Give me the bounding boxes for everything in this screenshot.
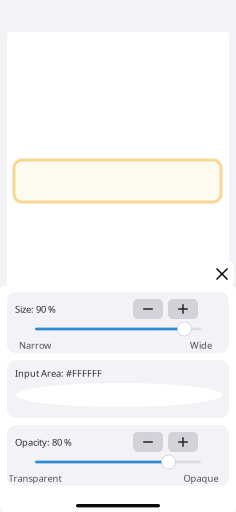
staticText: Transparent — [8, 472, 61, 484]
staticText: Opaque — [183, 472, 218, 484]
button[interactable]: Decrease — [133, 432, 163, 452]
staticText: Opacity: 80 % — [15, 436, 72, 448]
button[interactable]: Close — [210, 262, 234, 286]
staticText: Size: 90 % — [15, 303, 56, 315]
staticText: Input Area: #FFFFFF — [15, 367, 102, 379]
staticText: Wide — [190, 339, 212, 351]
staticText: Narrow — [19, 339, 51, 351]
button[interactable]: Increase — [168, 299, 198, 319]
button[interactable]: Decrease — [133, 299, 163, 319]
button[interactable]: Increase — [168, 432, 198, 452]
